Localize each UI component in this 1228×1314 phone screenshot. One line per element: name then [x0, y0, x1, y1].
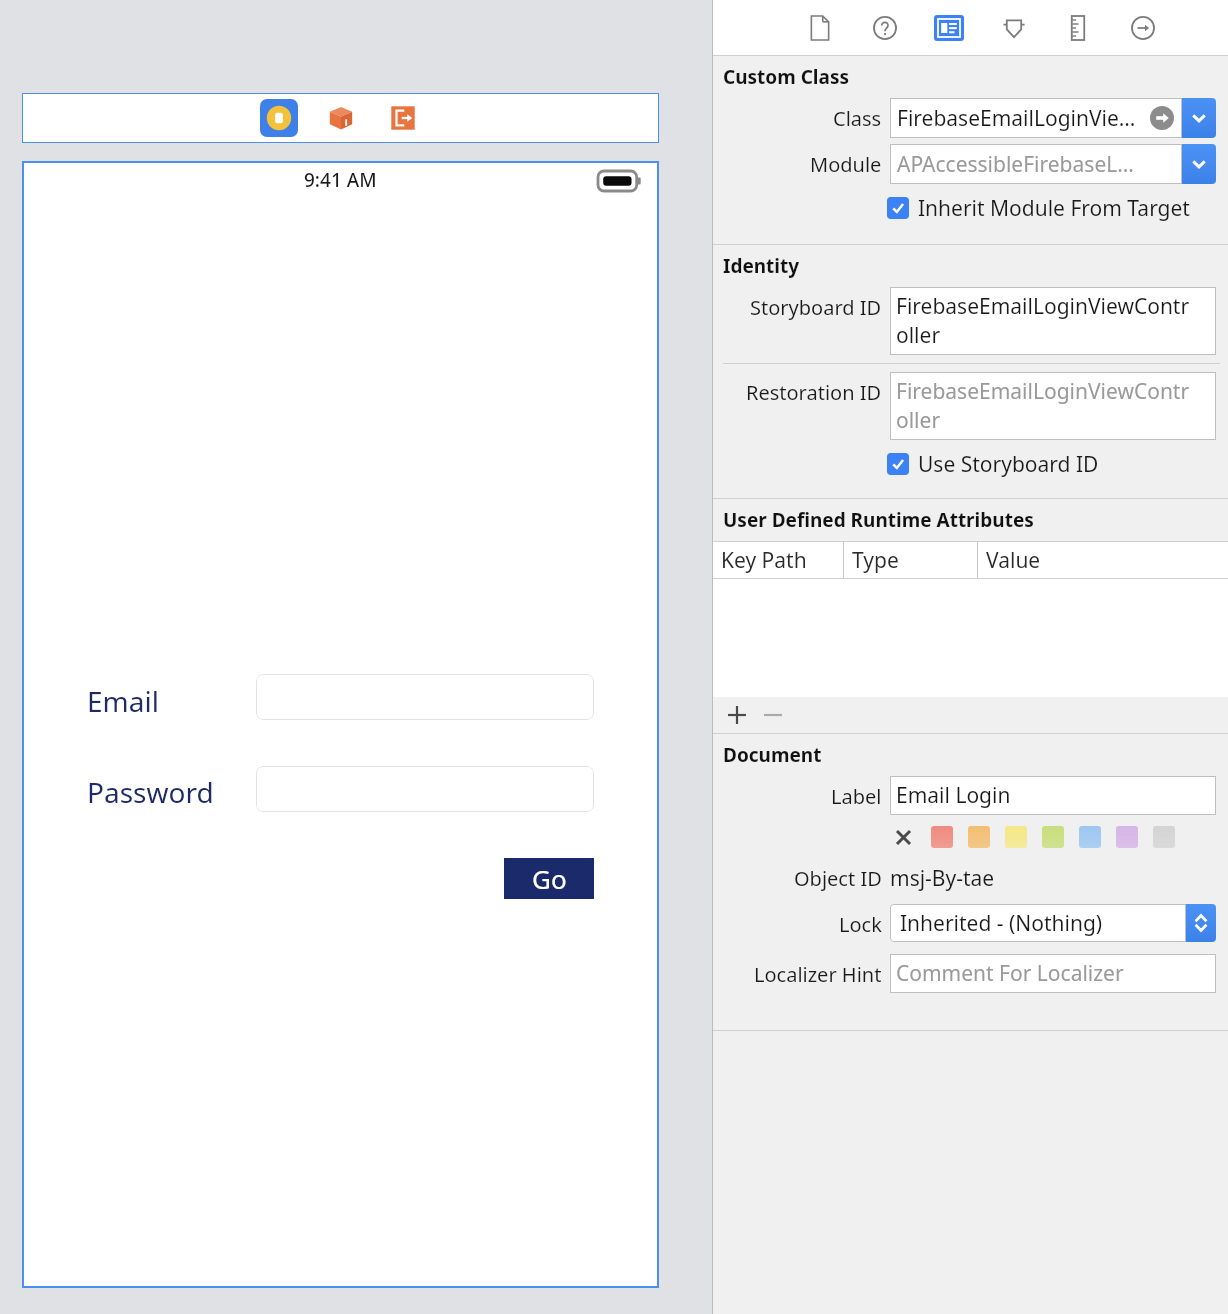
staticText: Object ID	[794, 865, 882, 892]
button[interactable]: Show options	[1182, 144, 1216, 184]
button[interactable]: Text field	[256, 674, 594, 720]
staticText: User Defined Runtime Attributes	[723, 507, 1034, 533]
staticText: Identity	[723, 253, 800, 279]
staticText: Label	[831, 783, 882, 810]
staticText: Go	[532, 861, 567, 896]
button[interactable]: Use Storyboard ID	[887, 448, 1228, 480]
button[interactable]: Color label	[968, 826, 990, 848]
staticText: Inherit Module From Target	[918, 194, 1190, 223]
button[interactable]: Show options	[1182, 98, 1216, 138]
button[interactable]: No color	[890, 824, 916, 850]
button[interactable]: FirebaseEmailLoginViewContr	[890, 287, 1216, 355]
staticText: Key Path	[721, 546, 807, 575]
button[interactable]: Quick help inspector	[870, 14, 900, 42]
button[interactable]: Exit	[384, 99, 422, 137]
staticText: FirebaseEmailLoginViewContr	[896, 292, 1190, 321]
staticText: oller	[896, 321, 941, 350]
button[interactable]: Inherited - (Nothing)	[890, 904, 1216, 942]
button[interactable]: View controller	[260, 99, 298, 137]
button[interactable]: APAccessibleFirebaseL…	[890, 144, 1216, 184]
button[interactable]: Attributes inspector	[999, 14, 1029, 42]
staticText: FirebaseEmailLoginViewContr	[896, 377, 1190, 406]
staticText: FirebaseEmailLoginVie…	[897, 104, 1136, 133]
staticText: Localizer Hint	[754, 961, 882, 988]
button[interactable]: Remove attribute	[759, 701, 787, 729]
staticText: Storyboard ID	[750, 294, 882, 321]
staticText: Inherited - (Nothing)	[900, 909, 1103, 938]
staticText: Restoration ID	[746, 379, 882, 406]
staticText: 9:41 AM	[304, 167, 377, 193]
staticText: msj-By-tae	[890, 864, 995, 893]
button[interactable]: Color label	[1116, 826, 1138, 848]
button[interactable]: Connections inspector	[1128, 14, 1158, 42]
staticText: Custom Class	[723, 64, 849, 90]
staticText: Class	[833, 105, 882, 132]
staticText: Email Login	[896, 781, 1011, 810]
staticText: Module	[810, 151, 882, 178]
staticText: Password	[87, 773, 214, 811]
button[interactable]: Text field	[256, 766, 594, 812]
button[interactable]: Inherit Module From Target	[887, 192, 1228, 224]
staticText: Document	[723, 742, 822, 768]
staticText: APAccessibleFirebaseL…	[897, 150, 1134, 179]
button[interactable]: Comment For Localizer	[890, 954, 1216, 993]
button[interactable]: File inspector	[805, 14, 835, 42]
button[interactable]: Add attribute	[723, 701, 751, 729]
button[interactable]: Color label	[931, 826, 953, 848]
staticText: Lock	[839, 911, 882, 938]
button[interactable]: Color label	[1042, 826, 1064, 848]
button[interactable]: Size inspector	[1063, 14, 1093, 42]
button[interactable]: Email Login	[890, 776, 1216, 815]
button[interactable]: Color label	[1005, 826, 1027, 848]
staticText: Use Storyboard ID	[918, 450, 1099, 479]
button[interactable]: FirebaseEmailLoginViewContr	[890, 372, 1216, 440]
button[interactable]: 9:41 AM	[22, 161, 659, 1288]
staticText: Type	[852, 546, 899, 575]
staticText: Comment For Localizer	[896, 959, 1124, 988]
button[interactable]: Change value	[1186, 904, 1216, 942]
staticText: Value	[986, 546, 1041, 575]
staticText: Email	[87, 682, 159, 720]
button[interactable]: Color label	[1079, 826, 1101, 848]
button[interactable]: FirebaseEmailLoginVie…	[890, 98, 1216, 138]
button[interactable]: Go	[504, 858, 594, 899]
button[interactable]: First responder	[322, 99, 360, 137]
staticText: oller	[896, 406, 941, 435]
button[interactable]: Identity inspector	[934, 15, 964, 41]
